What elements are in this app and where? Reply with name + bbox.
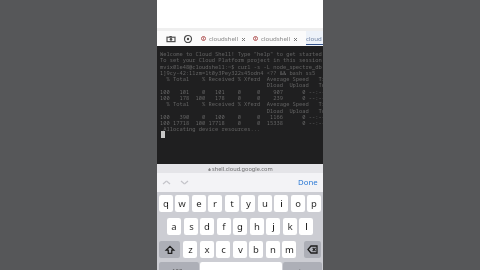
button[interactable]: z (183, 241, 197, 258)
staticText: n (270, 243, 276, 256)
staticText: k (287, 220, 293, 233)
button[interactable]: Previous field (160, 176, 173, 189)
staticText: a (171, 220, 177, 233)
button[interactable]: r (208, 195, 222, 212)
staticText: Dload Upload Total (160, 107, 323, 114)
staticText: e (196, 197, 202, 210)
staticText: 100 17718 100 17718 0 0 15338 0 --:--:-- (160, 119, 323, 126)
button[interactable]: Delete (304, 241, 321, 258)
staticText: c (221, 243, 226, 256)
button[interactable]: q (159, 195, 173, 212)
staticText: x (204, 243, 210, 256)
staticText: q (163, 197, 169, 210)
button[interactable]: Next field (178, 176, 191, 189)
staticText: w (178, 197, 186, 210)
button[interactable]: Extensions (182, 31, 193, 46)
staticText: Allocating device resources... (160, 125, 261, 132)
button[interactable]: o (291, 195, 305, 212)
staticText: p (311, 197, 317, 210)
staticText: g (237, 220, 243, 233)
button[interactable]: cloudshell (253, 31, 298, 46)
staticText: shell.cloud.google.com (212, 165, 273, 173)
staticText: 123 (172, 267, 183, 270)
staticText: i (280, 197, 283, 210)
staticText: return (293, 267, 312, 270)
button[interactable]: f (217, 218, 231, 235)
staticText: z (188, 243, 193, 256)
staticText: cloud (306, 34, 322, 42)
button[interactable]: c (216, 241, 230, 258)
button[interactable]: k (283, 218, 297, 235)
staticText: v (238, 243, 243, 256)
staticText: l (305, 220, 308, 233)
staticText: 100 178 100 178 0 0 239 0 --:--:-- (160, 94, 323, 101)
button[interactable]: Screenshot (165, 31, 176, 46)
button[interactable]: h (250, 218, 264, 235)
button[interactable]: b (249, 241, 263, 258)
staticText: 100 101 0 101 0 0 907 0 --:--:-- (160, 88, 323, 95)
button[interactable]: l (299, 218, 313, 235)
button[interactable]: s (184, 218, 198, 235)
staticText: Done (298, 177, 318, 188)
button[interactable]: Close tab (240, 36, 246, 42)
staticText: Welcome to Cloud Shell! Type "help" to g… (160, 50, 323, 57)
staticText: t (230, 197, 234, 210)
button[interactable]: cloudshell (201, 31, 246, 46)
button[interactable]: t (225, 195, 239, 212)
button[interactable]: Shift (159, 241, 180, 258)
button[interactable]: Done (295, 175, 320, 189)
staticText: mvix0le48@cloudshell:~$ curl -s -L node_… (160, 63, 322, 70)
staticText: To set your Cloud Platform project in th… (160, 56, 323, 63)
button[interactable]: n (266, 241, 280, 258)
button[interactable]: u (258, 195, 272, 212)
button[interactable]: cloud (306, 31, 323, 46)
button[interactable]: 123 (159, 262, 199, 270)
staticText: y (246, 197, 251, 210)
button[interactable]: g (233, 218, 247, 235)
staticText: f (222, 220, 226, 233)
button[interactable]: p (307, 195, 321, 212)
staticText: o (295, 197, 301, 210)
button[interactable]: y (241, 195, 255, 212)
button[interactable]: a (167, 218, 181, 235)
button[interactable]: v (233, 241, 247, 258)
staticText: cloudshell (261, 34, 290, 42)
staticText: r (213, 197, 217, 210)
button[interactable]: shell.cloud.google.com (208, 165, 273, 173)
button[interactable]: x (200, 241, 214, 258)
staticText: s (189, 220, 194, 233)
staticText: d (204, 220, 210, 233)
staticText: h (254, 220, 260, 233)
staticText: 1]9cy-42:1lzm=1t0y3Pey322s45odn4 <?? && … (160, 69, 316, 76)
staticText: m (285, 243, 294, 256)
button[interactable]: e (192, 195, 206, 212)
button[interactable]: m (282, 241, 296, 258)
staticText: j (272, 220, 275, 233)
staticText: u (262, 197, 268, 210)
staticText: % Total % Received % Xferd Average Speed… (160, 75, 323, 82)
staticText: Dload Upload Total (160, 81, 323, 88)
staticText: 100 390 0 100 0 0 1166 0 --:--:-- (160, 113, 323, 120)
button[interactable]: d (200, 218, 214, 235)
staticText: b (253, 243, 259, 256)
staticText: % Total % Received % Xferd Average Speed… (160, 100, 323, 107)
button[interactable]: j (266, 218, 280, 235)
button[interactable]: i (274, 195, 288, 212)
button[interactable]: w (175, 195, 189, 212)
staticText: cloudshell (209, 34, 238, 42)
button[interactable]: Close tab (292, 36, 298, 42)
